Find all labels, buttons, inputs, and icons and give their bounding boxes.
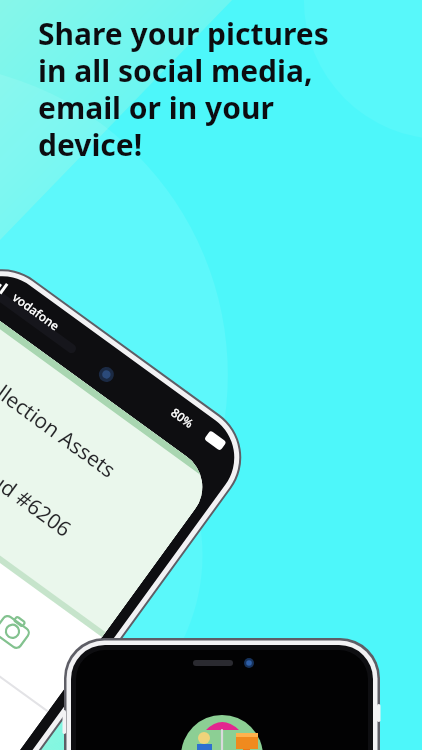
button[interactable]: Share your pictures in all social media,…	[0, 0, 422, 750]
